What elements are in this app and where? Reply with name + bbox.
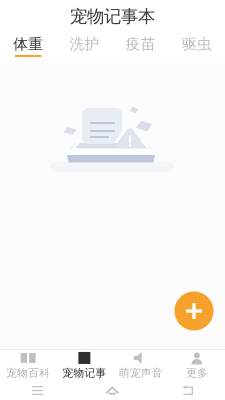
staticText: 萌宠声音 xyxy=(119,366,163,379)
button[interactable]: Recents xyxy=(0,382,75,399)
staticText: 洗护 xyxy=(69,35,99,53)
staticText: 驱虫 xyxy=(182,35,212,53)
staticText: 体重 xyxy=(13,35,43,53)
button[interactable]: Home xyxy=(75,382,150,399)
button[interactable]: 更多 xyxy=(169,350,225,381)
button[interactable]: Back xyxy=(150,382,225,399)
staticText: 疫苗 xyxy=(126,35,156,53)
staticText: 更多 xyxy=(186,366,208,379)
button[interactable]: 萌宠声音 xyxy=(112,350,169,381)
staticText: 宠物记事 xyxy=(62,366,106,379)
button[interactable]: 洗护 xyxy=(56,33,112,59)
staticText: 宠物百科 xyxy=(6,366,50,379)
button[interactable]: 驱虫 xyxy=(169,33,225,59)
button[interactable]: 宠物百科 xyxy=(0,350,56,381)
button[interactable]: Add record xyxy=(174,291,213,330)
button[interactable]: 体重 xyxy=(0,33,56,59)
button[interactable]: 疫苗 xyxy=(112,33,169,59)
staticText: 宠物记事本 xyxy=(70,6,155,27)
button[interactable]: 宠物记事 xyxy=(56,350,112,381)
